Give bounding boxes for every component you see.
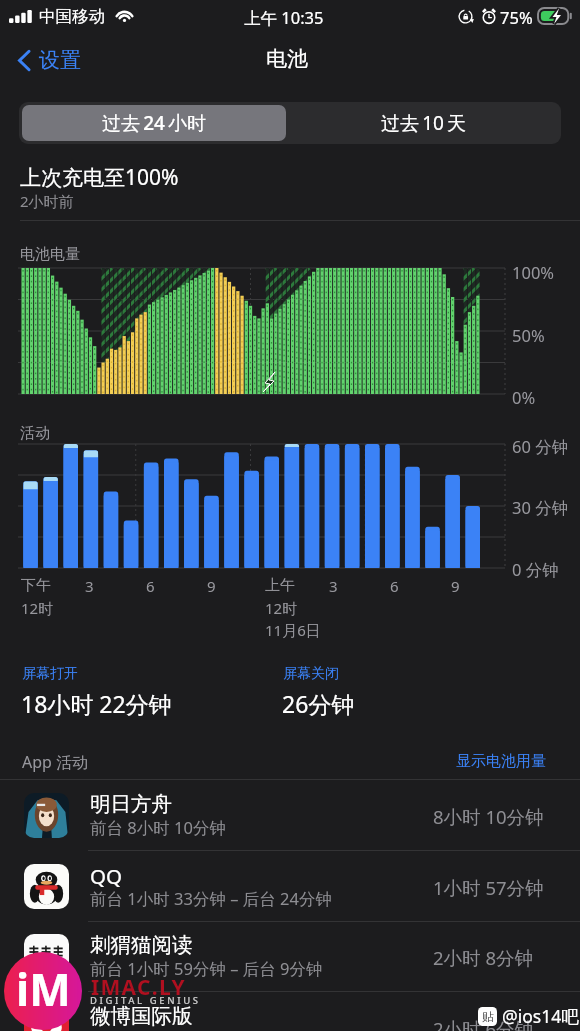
- staticText: 60 分钟: [512, 435, 569, 458]
- staticText: 屏幕打开: [22, 665, 78, 683]
- staticText: IMAC.LY: [91, 973, 186, 1002]
- staticText: 2小时 8分钟: [433, 945, 533, 970]
- staticText: 2小时前: [20, 191, 74, 211]
- staticText: 2小时 6分钟: [433, 1016, 533, 1031]
- staticText: DIGITAL GENIUS: [90, 994, 201, 1007]
- staticText: 显示电池用量: [456, 752, 546, 771]
- staticText: 电池电量: [20, 245, 80, 264]
- staticText: 前台 1小时 59分钟 – 后台 9分钟: [90, 957, 323, 980]
- staticText: 18小时 22分钟: [21, 688, 172, 719]
- staticText: 12时: [265, 598, 298, 618]
- staticText: App 活动: [22, 751, 89, 773]
- staticText: 前台 8小时 10分钟: [90, 816, 226, 839]
- staticText: 9: [207, 576, 216, 596]
- staticText: 前台 1小时 33分钟 – 后台 24分钟: [90, 887, 332, 910]
- button[interactable]: QQ: [0, 851, 580, 921]
- staticText: 上午 10:35: [244, 6, 324, 29]
- staticText: 8小时 10分钟: [433, 804, 544, 829]
- staticText: 刺猬猫阅读: [90, 932, 193, 958]
- staticText: 屏幕关闭: [283, 665, 339, 683]
- button[interactable]: 过去 24 小时: [22, 105, 286, 141]
- staticText: 11月6日: [265, 620, 321, 640]
- staticText: 9: [451, 576, 460, 596]
- staticText: 明日方舟: [90, 791, 172, 817]
- button[interactable]: 显示电池用量: [456, 752, 546, 771]
- staticText: 0%: [512, 386, 536, 408]
- staticText: 6: [390, 576, 399, 596]
- staticText: 26分钟: [282, 688, 355, 719]
- button[interactable]: 过去 10 天: [289, 105, 558, 141]
- staticText: 微博国际版: [90, 1003, 193, 1029]
- staticText: 贴: [482, 1009, 494, 1024]
- staticText: 过去 10 天: [381, 110, 467, 136]
- staticText: 6: [146, 576, 155, 596]
- staticText: 电池: [266, 46, 308, 72]
- button[interactable]: 设置: [12, 44, 86, 76]
- button[interactable]: 刺猬猫阅读: [0, 921, 580, 991]
- staticText: 30 分钟: [512, 496, 569, 519]
- staticText: 下午: [21, 576, 51, 595]
- staticText: 3: [329, 576, 338, 596]
- staticText: 100%: [512, 261, 555, 283]
- staticText: 活动: [20, 424, 50, 443]
- staticText: 75%: [500, 6, 533, 28]
- staticText: iM: [16, 959, 71, 1019]
- staticText: 3: [85, 576, 94, 596]
- other: Alarm: [481, 8, 497, 24]
- staticText: 1小时 57分钟: [433, 875, 544, 900]
- staticText: 0 分钟: [512, 558, 559, 581]
- staticText: 过去 24 小时: [102, 110, 207, 136]
- button[interactable]: 明日方舟: [0, 780, 580, 850]
- staticText: 12时: [21, 598, 54, 618]
- staticText: 设置: [39, 47, 81, 73]
- staticText: QQ: [90, 862, 123, 890]
- staticText: @ios14吧: [502, 1004, 579, 1028]
- button[interactable]: 微博国际版: [0, 992, 580, 1031]
- staticText: 中国移动: [39, 6, 105, 27]
- staticText: 50%: [512, 324, 545, 346]
- staticText: 上次充电至100%: [20, 163, 179, 192]
- other: Rotation lock: [458, 9, 474, 25]
- staticText: 上午: [265, 576, 295, 595]
